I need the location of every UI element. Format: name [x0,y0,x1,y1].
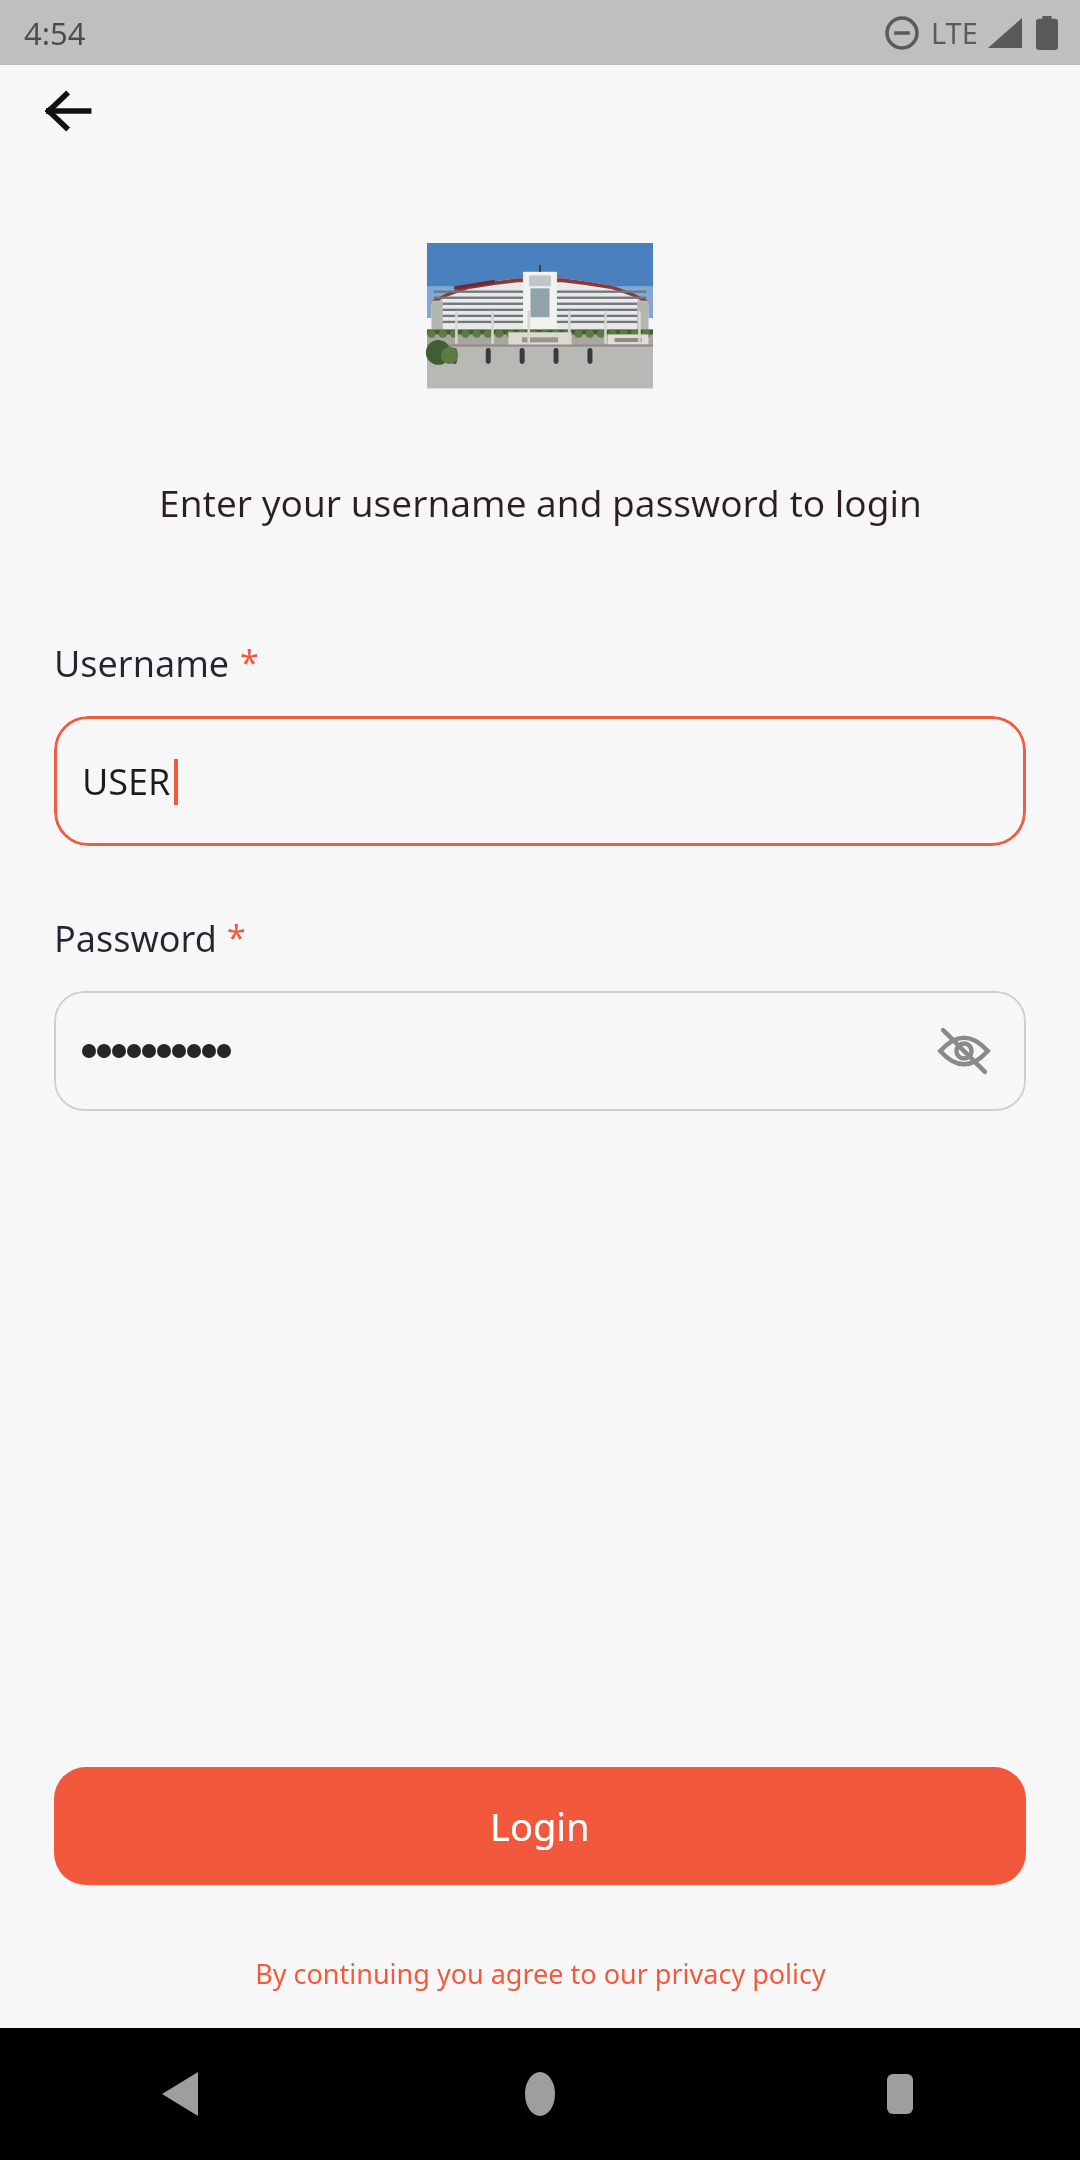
staticText: Login [490,1800,590,1852]
button[interactable]: Show password [926,1013,1002,1089]
staticText: 4:54 [24,12,86,54]
staticText: Enter your username and password to logi… [159,477,922,527]
staticText: * [227,914,246,960]
button[interactable]: Home [485,2039,595,2149]
staticText: LTE [931,13,978,52]
button[interactable]: Show password [54,991,1026,1111]
staticText: Username [54,639,230,688]
staticText: * [240,639,259,685]
button[interactable]: By continuing you agree to our privacy p… [249,1951,832,1996]
button[interactable]: Login [54,1767,1026,1885]
staticText: Password [54,914,217,963]
button[interactable]: USER [54,716,1026,846]
staticText: USER [82,757,171,806]
button[interactable]: Back [30,73,106,149]
staticText: By continuing you agree to our privacy p… [255,1955,826,1992]
button[interactable]: Recent apps [845,2039,955,2149]
button[interactable]: Back [125,2039,235,2149]
